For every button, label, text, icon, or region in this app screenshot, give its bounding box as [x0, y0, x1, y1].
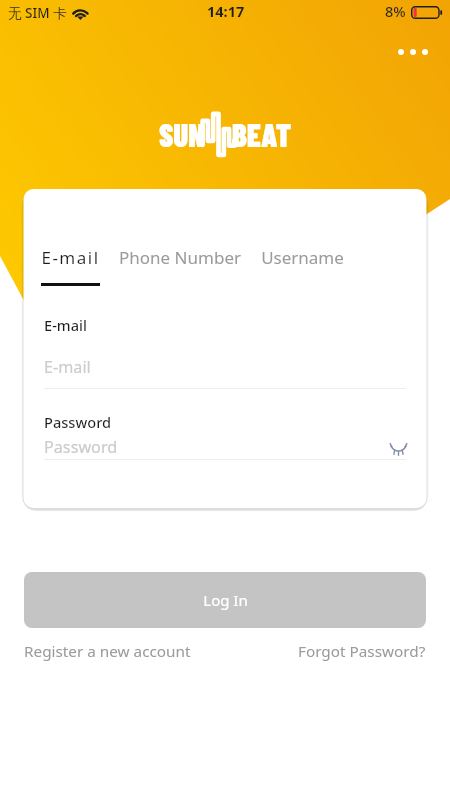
- button[interactable]: Phone Number: [118, 246, 242, 269]
- staticText: E-mail: [44, 315, 87, 335]
- button[interactable]: Register a new account: [24, 641, 191, 662]
- staticText: 8%: [385, 1, 406, 21]
- staticText: Register a new account: [24, 641, 191, 662]
- staticText: 14:17: [207, 1, 245, 21]
- button[interactable]: E-mail: [41, 246, 100, 286]
- button[interactable]: Username: [258, 246, 346, 269]
- staticText: Username: [261, 246, 344, 269]
- staticText: Log In: [203, 590, 248, 610]
- button[interactable]: More options: [390, 34, 436, 70]
- staticText: E-mail: [44, 356, 91, 378]
- staticText: SUN: [159, 116, 205, 153]
- staticText: E-mail: [41, 246, 100, 269]
- staticText: BEAT: [232, 116, 292, 153]
- staticText: 无 SIM 卡: [8, 4, 67, 22]
- button[interactable]: Log In: [24, 572, 426, 628]
- staticText: Forgot Password?: [298, 641, 426, 662]
- button[interactable]: E-mail: [44, 356, 406, 391]
- staticText: Phone Number: [119, 246, 241, 269]
- staticText: Password: [44, 412, 112, 432]
- button[interactable]: Password: [44, 436, 406, 461]
- button[interactable]: Forgot Password?: [24, 641, 426, 662]
- button[interactable]: Show password: [386, 436, 410, 460]
- staticText: Password: [44, 436, 118, 458]
